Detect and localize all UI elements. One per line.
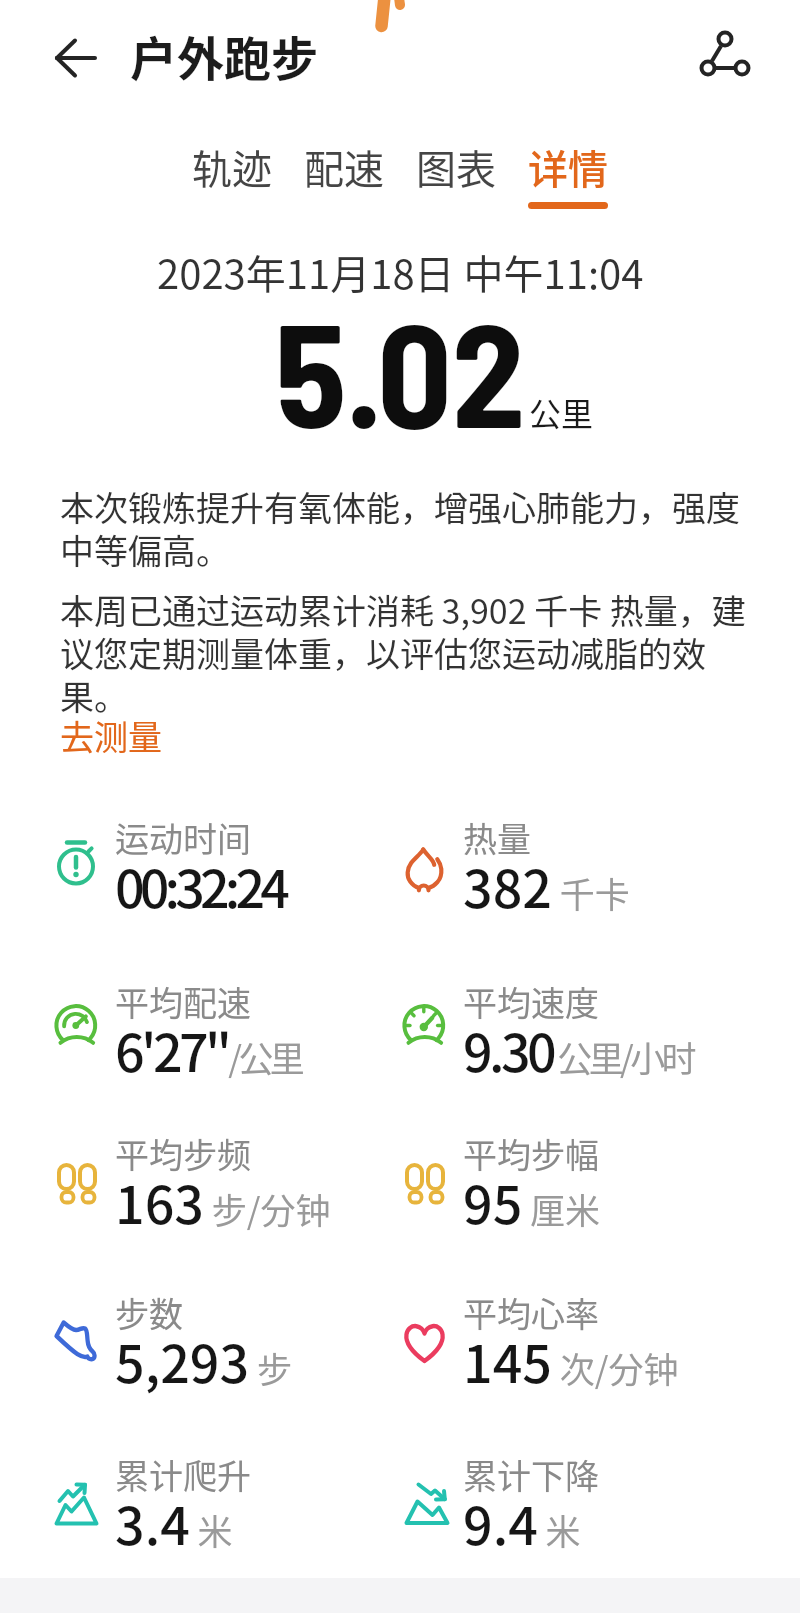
button[interactable]: 图表	[416, 138, 496, 209]
button[interactable]: 累计爬升	[55, 1450, 403, 1574]
button[interactable]: 轨迹	[192, 138, 272, 209]
staticText: 运动时间	[115, 813, 251, 862]
staticText: 本周已通过运动累计消耗 3,902 千卡 热量，建 议您定期测量体重，以评估您运…	[60, 585, 746, 720]
staticText: 382 千卡	[463, 848, 630, 923]
staticText: 平均速度	[463, 977, 599, 1026]
staticText: 00:32:24	[115, 848, 286, 923]
button[interactable]: 平均步频	[55, 1129, 403, 1253]
staticText: 9.4 米	[463, 1485, 581, 1560]
button[interactable]	[55, 37, 97, 79]
button[interactable]	[699, 34, 757, 92]
staticText: 配速	[304, 138, 384, 196]
staticText: 95 厘米	[463, 1164, 601, 1239]
staticText: 累计下降	[463, 1450, 599, 1499]
staticText: 轨迹	[192, 138, 272, 196]
staticText: 6'27"/公里	[115, 1012, 302, 1087]
staticText: 平均步频	[115, 1129, 251, 1178]
staticText: 步数	[115, 1288, 183, 1337]
staticText: 5.02	[275, 282, 525, 457]
button[interactable]: 平均配速	[55, 977, 403, 1101]
button[interactable]: 运动时间	[55, 813, 403, 937]
staticText: 3.4 米	[115, 1485, 233, 1560]
button[interactable]: 详情	[528, 138, 608, 209]
button[interactable]: 热量	[403, 813, 800, 937]
staticText: 累计爬升	[115, 1450, 251, 1499]
staticText: 145 次/分钟	[463, 1323, 679, 1398]
button[interactable]: 步数	[55, 1288, 403, 1412]
staticText: 5,293 步	[115, 1323, 292, 1398]
staticText: 9.30 公里/小时	[463, 1012, 693, 1087]
button[interactable]: 平均步幅	[403, 1129, 800, 1253]
staticText: 平均心率	[463, 1288, 599, 1337]
staticText: 图表	[416, 138, 496, 196]
staticText: 163 步/分钟	[115, 1164, 331, 1239]
staticText: 2023年11月18日 中午11:04	[157, 243, 644, 301]
button[interactable]: 平均心率	[403, 1288, 800, 1412]
staticText: 平均步幅	[463, 1129, 599, 1178]
button[interactable]: 平均速度	[403, 977, 800, 1101]
staticText: 本次锻炼提升有氧体能，增强心肺能力，强度 中等偏高。	[60, 482, 740, 574]
staticText: 公里	[529, 389, 594, 435]
staticText: 详情	[528, 138, 608, 196]
staticText: 平均配速	[115, 977, 251, 1026]
button[interactable]: 累计下降	[403, 1450, 800, 1574]
staticText: 热量	[463, 813, 531, 862]
staticText: 户外跑步	[130, 21, 318, 89]
button[interactable]: 去测量	[60, 711, 162, 760]
button[interactable]: 配速	[304, 138, 384, 209]
